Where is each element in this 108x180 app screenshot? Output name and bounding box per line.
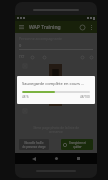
button[interactable]: Enregistrer et quitter [61,139,93,150]
button[interactable]: Action [89,55,93,59]
button[interactable]: Open navigation menu [18,24,25,31]
button[interactable]: More options [88,24,94,30]
button[interactable]: Help [79,24,86,31]
button[interactable]: Nouvelle feuille de presence vierge [19,139,49,150]
staticText: TXT [19,55,25,59]
staticText: 48 % [22,95,29,99]
staticText: 0 [19,43,22,48]
staticText: Sauvegarde complète en cours ... [22,81,85,86]
button[interactable]: Photo [49,64,62,106]
staticText: 3ème page photo de la liste de presence [19,126,93,133]
button[interactable]: Action [80,55,84,59]
button[interactable]: Home [52,154,61,163]
staticText: 48/100 [80,95,90,99]
button[interactable]: Camera [22,78,27,83]
button[interactable]: Camera [22,93,27,98]
staticText: Nouvelle feuille de presence vierge [22,141,46,149]
button[interactable]: Format option [30,55,34,59]
staticText: WAP Training [29,24,61,31]
button[interactable]: Back [29,154,38,163]
staticText: Enregistrer et quitter [69,141,86,149]
button[interactable]: Recent apps [74,154,83,163]
button[interactable]: Format option [42,55,46,59]
staticText: Personne accompagnante [19,36,63,41]
